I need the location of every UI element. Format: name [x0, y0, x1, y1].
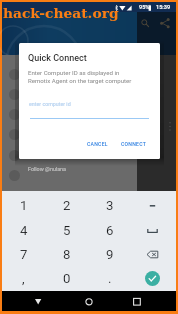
button[interactable]: CONNECT [118, 138, 149, 150]
button[interactable]: 6 [88, 218, 131, 243]
button[interactable]: Dash [131, 193, 174, 218]
button[interactable]: 2 [45, 193, 88, 218]
staticText: Enter Computer ID as displayed in [28, 69, 120, 76]
staticText: 0 [63, 271, 71, 286]
staticText: 15:39 [156, 4, 171, 11]
button[interactable]: . [88, 266, 131, 291]
staticText: 95% [139, 4, 150, 11]
staticText: 8 [63, 247, 71, 262]
button[interactable]: Back [30, 295, 48, 309]
button[interactable]: Search [137, 15, 154, 32]
button[interactable]: 8 [45, 242, 88, 267]
staticText: , [22, 271, 25, 286]
staticText: 6 [106, 223, 114, 238]
button[interactable]: 3 [88, 193, 131, 218]
button[interactable]: 9 [88, 242, 131, 267]
staticText: 5 [63, 223, 71, 238]
button[interactable]: Space [131, 218, 174, 243]
staticText: CONNECT [121, 141, 147, 147]
button[interactable]: Home [80, 295, 98, 309]
staticText: CANCEL [87, 141, 108, 147]
staticText: 7 [20, 247, 28, 262]
button[interactable]: , [2, 266, 45, 291]
button[interactable]: Backspace [131, 242, 174, 267]
staticText: hack-cheat.org [3, 5, 119, 21]
staticText: Quick Connect [28, 53, 87, 64]
button[interactable]: 1 [2, 193, 45, 218]
button[interactable]: Recents [128, 295, 146, 309]
button[interactable]: CANCEL [84, 138, 110, 150]
button[interactable]: 4 [2, 218, 45, 243]
staticText: Remotix Agent on the target computer [28, 77, 132, 84]
button[interactable]: Share [157, 15, 174, 32]
staticText: 1 [20, 198, 28, 213]
staticText: 2 [63, 198, 71, 213]
button[interactable]: 5 [45, 218, 88, 243]
staticText: 4 [20, 223, 28, 238]
staticText: 9 [106, 247, 114, 262]
button[interactable]: 7 [2, 242, 45, 267]
staticText: . [108, 271, 112, 286]
staticText: 3 [106, 198, 114, 213]
staticText: enter computer id [29, 101, 71, 107]
staticText: Follow @nulana [28, 166, 67, 172]
button[interactable]: 0 [45, 266, 88, 291]
button[interactable]: Enter [131, 266, 174, 291]
